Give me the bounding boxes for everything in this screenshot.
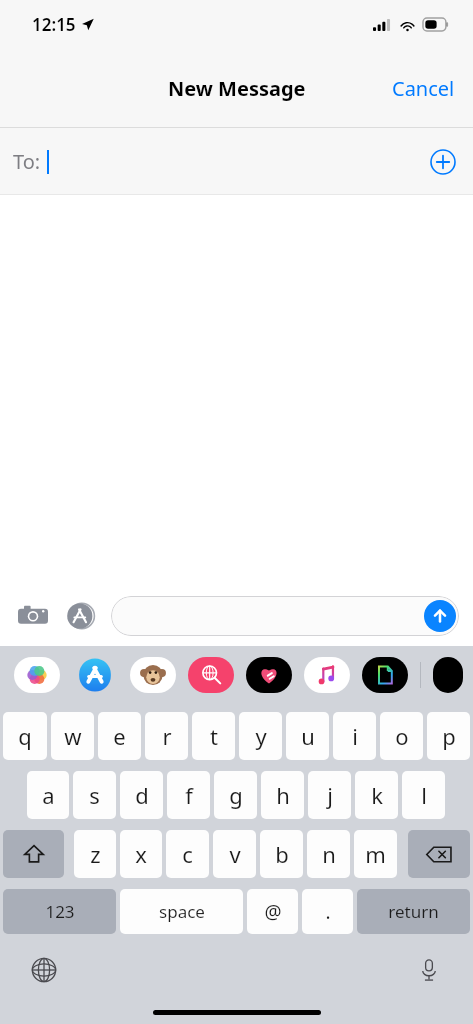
button[interactable]: v	[213, 830, 256, 878]
button[interactable]: @	[247, 889, 298, 934]
staticText: g	[229, 780, 243, 810]
staticText: To:	[13, 148, 41, 175]
button[interactable]: m	[354, 830, 397, 878]
button[interactable]: r	[145, 712, 188, 760]
button[interactable]: d	[120, 771, 163, 819]
button[interactable]: Photos	[14, 657, 60, 693]
button[interactable]: p	[427, 712, 470, 760]
button[interactable]: b	[260, 830, 303, 878]
staticText: New Message	[168, 75, 306, 102]
button[interactable]: Add contact	[425, 144, 461, 180]
button[interactable]: 123	[3, 889, 116, 934]
staticText: j	[327, 780, 333, 810]
staticText: @	[264, 899, 282, 925]
button[interactable]: Images	[188, 657, 234, 693]
staticText: h	[276, 780, 290, 810]
button[interactable]: g	[214, 771, 257, 819]
button[interactable]: e	[98, 712, 141, 760]
staticText: v	[229, 839, 241, 869]
button[interactable]: t	[192, 712, 235, 760]
button[interactable]: z	[74, 830, 116, 878]
button[interactable]: space	[120, 889, 243, 934]
button[interactable]: Shift	[3, 830, 64, 878]
button[interactable]: Send	[111, 596, 459, 636]
staticText: c	[182, 839, 193, 869]
staticText: d	[135, 780, 149, 810]
button[interactable]: Backspace	[408, 830, 470, 878]
button[interactable]: w	[51, 712, 94, 760]
button[interactable]: Music	[304, 657, 350, 693]
staticText: Cancel	[392, 75, 455, 102]
button[interactable]: Camera	[14, 597, 52, 635]
staticText: .	[325, 899, 331, 925]
staticText: p	[442, 721, 456, 751]
button[interactable]: return	[357, 889, 470, 934]
button[interactable]: y	[239, 712, 282, 760]
button[interactable]: c	[166, 830, 209, 878]
staticText: z	[90, 839, 101, 869]
staticText: x	[135, 839, 147, 869]
button[interactable]: App Store	[72, 657, 118, 693]
button[interactable]: j	[308, 771, 351, 819]
button[interactable]: Send	[424, 600, 456, 632]
button[interactable]: a	[27, 771, 69, 819]
button[interactable]: Cancel	[374, 65, 473, 112]
staticText: o	[395, 721, 409, 751]
button[interactable]: Files	[362, 657, 408, 693]
button[interactable]: o	[380, 712, 423, 760]
staticText: q	[18, 721, 32, 751]
staticText: y	[255, 721, 267, 751]
staticText: i	[352, 721, 358, 751]
button[interactable]: f	[167, 771, 210, 819]
staticText: f	[185, 780, 193, 810]
button[interactable]: Memoji	[130, 657, 176, 693]
button[interactable]: Digital Touch	[246, 657, 292, 693]
button[interactable]: x	[120, 830, 162, 878]
button[interactable]: n	[307, 830, 350, 878]
staticText: r	[162, 721, 172, 751]
staticText: a	[42, 780, 55, 810]
staticText: return	[388, 900, 439, 923]
button[interactable]: s	[73, 771, 116, 819]
button[interactable]: h	[261, 771, 304, 819]
staticText: w	[64, 721, 82, 751]
staticText: e	[113, 721, 126, 751]
button[interactable]: i	[333, 712, 376, 760]
staticText: u	[301, 721, 315, 751]
staticText: l	[421, 780, 427, 810]
staticText: 123	[45, 900, 75, 923]
staticText: b	[275, 839, 289, 869]
button[interactable]: App Store	[62, 597, 100, 635]
staticText: space	[159, 900, 205, 923]
staticText: n	[322, 839, 336, 869]
staticText: s	[89, 780, 100, 810]
button[interactable]: q	[3, 712, 47, 760]
button[interactable]: More apps	[433, 657, 463, 693]
staticText: t	[210, 721, 218, 751]
staticText: k	[371, 780, 383, 810]
staticText: m	[365, 839, 386, 869]
staticText: 12:15	[32, 13, 76, 36]
button[interactable]: .	[302, 889, 353, 934]
button[interactable]: l	[402, 771, 445, 819]
button[interactable]: k	[355, 771, 398, 819]
button[interactable]: Change keyboard	[26, 952, 62, 988]
button[interactable]: Dictation	[411, 952, 447, 988]
button[interactable]: u	[286, 712, 329, 760]
